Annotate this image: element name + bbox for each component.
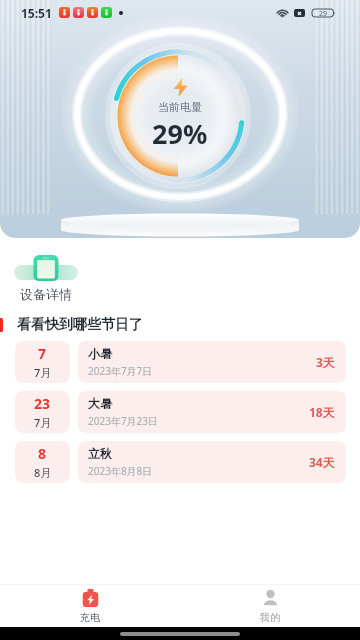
staticText: 大暑: [88, 396, 112, 411]
staticText: 我的: [260, 611, 280, 624]
staticText: 8: [38, 444, 47, 463]
button[interactable]: 我的: [180, 585, 360, 627]
staticText: 设备详情: [20, 286, 72, 302]
staticText: 2023年8月8日: [88, 464, 153, 478]
staticText: 当前电量: [158, 100, 202, 114]
staticText: 29: [319, 9, 328, 17]
staticText: 7: [38, 344, 47, 363]
staticText: 15:51: [21, 5, 52, 21]
staticText: 3天: [316, 354, 335, 370]
button[interactable]: 充电: [0, 585, 180, 627]
staticText: 34天: [309, 454, 335, 470]
staticText: 18天: [309, 404, 335, 420]
staticText: 29%: [152, 115, 208, 152]
staticText: 2023年7月23日: [88, 414, 159, 428]
button[interactable]: 8: [0, 441, 360, 483]
staticText: 2023年7月7日: [88, 364, 153, 378]
button[interactable]: 23: [0, 391, 360, 433]
staticText: 7月: [34, 415, 52, 430]
button[interactable]: 7: [0, 341, 360, 383]
staticText: 立秋: [88, 446, 112, 461]
staticText: 8月: [34, 465, 52, 480]
staticText: 23: [34, 394, 51, 413]
staticText: 看看快到哪些节日了: [17, 316, 143, 334]
button[interactable]: 设备详情: [14, 255, 78, 302]
staticText: 7月: [34, 365, 52, 380]
staticText: 小暑: [88, 346, 112, 361]
staticText: 充电: [80, 611, 100, 624]
